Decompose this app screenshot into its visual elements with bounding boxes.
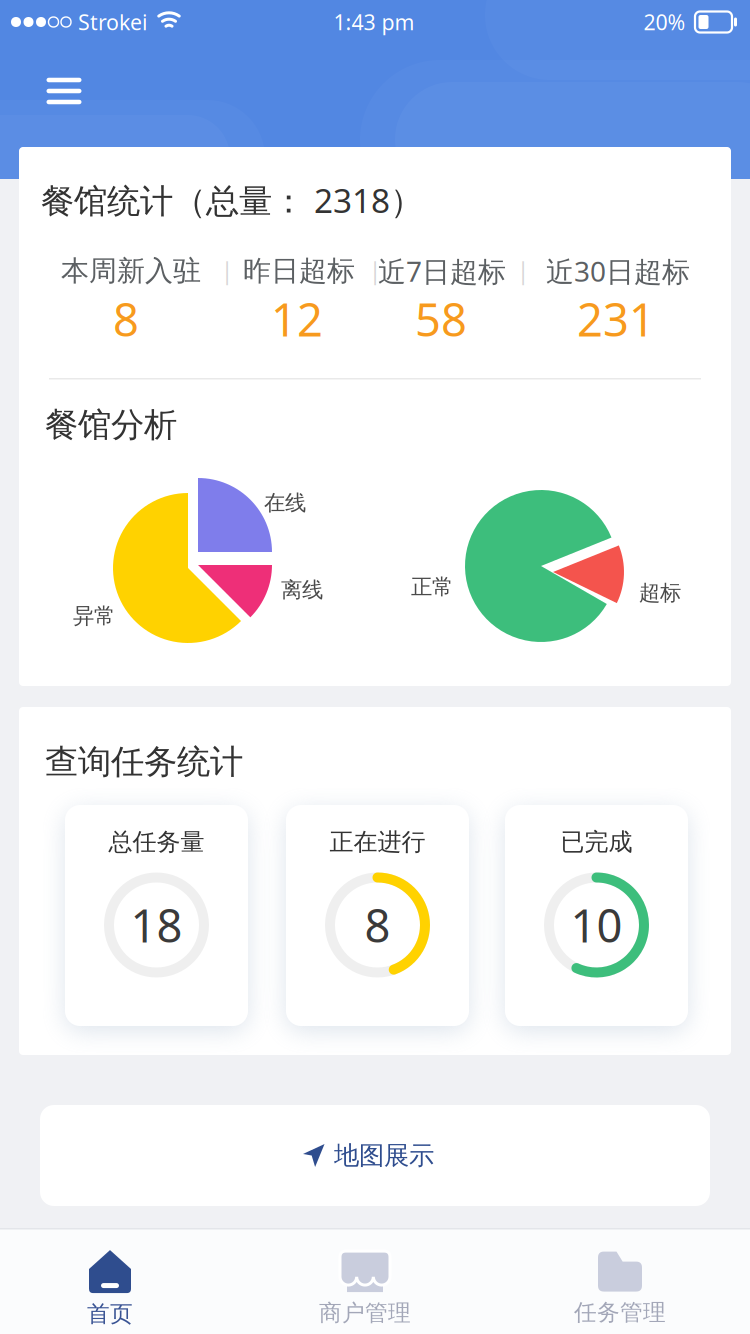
staticText: 地图展示 <box>334 1140 434 1171</box>
staticText: Strokei <box>78 8 148 36</box>
staticText: 餐馆统计（总量： 2318） <box>41 178 423 222</box>
staticText: 10 <box>570 895 622 955</box>
staticText: 离线 <box>281 577 323 603</box>
staticText: 本周新入驻 <box>61 254 201 288</box>
button[interactable]: Menu <box>42 71 86 111</box>
staticText: | <box>220 254 233 286</box>
staticText: | <box>368 254 381 286</box>
staticText: 在线 <box>264 490 306 516</box>
staticText: 58 <box>415 289 467 349</box>
staticText: 超标 <box>639 580 681 606</box>
staticText: 231 <box>577 289 655 349</box>
staticText: 任务管理 <box>574 1299 666 1326</box>
staticText: 餐馆分析 <box>45 404 177 445</box>
button[interactable]: 任务管理 <box>505 1241 735 1334</box>
staticText: 异常 <box>73 603 115 629</box>
staticText: 8 <box>113 289 139 349</box>
button[interactable]: 首页 <box>0 1241 225 1334</box>
staticText: 12 <box>271 289 323 349</box>
staticText: | <box>516 254 529 286</box>
staticText: 正常 <box>411 574 453 600</box>
staticText: 查询任务统计 <box>45 741 243 782</box>
staticText: 首页 <box>87 1300 133 1328</box>
staticText: 总任务量 <box>108 827 204 857</box>
staticText: 已完成 <box>560 827 632 857</box>
staticText: 商户管理 <box>319 1299 411 1327</box>
staticText: 8 <box>364 895 390 955</box>
button[interactable]: 地图展示 <box>40 1105 710 1206</box>
staticText: 昨日超标 <box>243 254 355 288</box>
staticText: 近30日超标 <box>546 252 690 290</box>
staticText: 20% <box>643 8 685 36</box>
staticText: 近7日超标 <box>378 252 506 290</box>
staticText: 18 <box>130 895 182 955</box>
staticText: 正在进行 <box>329 827 425 857</box>
staticText: 1:43 pm <box>333 8 414 36</box>
button[interactable]: 商户管理 <box>250 1241 480 1334</box>
